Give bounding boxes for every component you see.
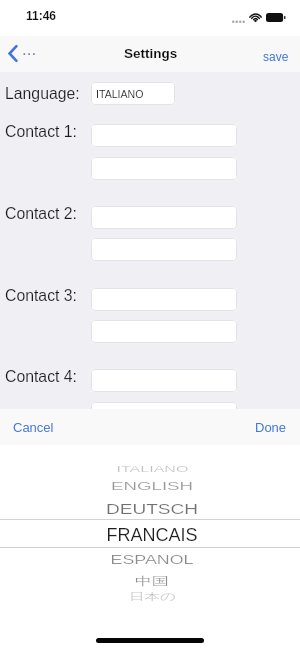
staticText: Language: bbox=[5, 85, 80, 103]
staticText: ... bbox=[22, 40, 37, 59]
staticText: Contact 4: bbox=[5, 368, 78, 386]
staticText: DEUTSCH bbox=[105, 501, 199, 517]
button[interactable] bbox=[91, 288, 237, 311]
staticText: save bbox=[263, 50, 289, 63]
staticText: ITALIANO bbox=[96, 88, 144, 100]
staticText: Done bbox=[255, 420, 287, 435]
staticText: Contact 3: bbox=[5, 287, 78, 305]
button[interactable]: Done bbox=[242, 411, 300, 444]
button[interactable] bbox=[91, 124, 237, 147]
button[interactable]: save bbox=[250, 42, 300, 71]
staticText: ESPANOL bbox=[110, 553, 194, 567]
staticText: Contact 1: bbox=[5, 123, 78, 141]
button[interactable] bbox=[91, 157, 237, 180]
button[interactable] bbox=[91, 402, 237, 425]
staticText: Settings bbox=[124, 46, 178, 61]
button[interactable] bbox=[91, 320, 237, 343]
staticText: FRANCAIS bbox=[106, 525, 198, 545]
staticText: 日本の bbox=[128, 590, 176, 603]
button[interactable] bbox=[91, 238, 237, 261]
staticText: Cancel bbox=[13, 420, 54, 435]
staticText: ENGLISH bbox=[110, 480, 194, 492]
button[interactable] bbox=[91, 369, 237, 392]
staticText: Contact 2: bbox=[5, 205, 78, 223]
button[interactable]: Back bbox=[2, 33, 40, 66]
staticText: 11:46 bbox=[26, 9, 57, 22]
staticText: ITALIANO bbox=[116, 464, 188, 474]
staticText: 中国 bbox=[135, 574, 169, 589]
button[interactable]: Cancel bbox=[0, 411, 67, 444]
button[interactable]: ITALIANO bbox=[91, 82, 175, 105]
button[interactable] bbox=[91, 206, 237, 229]
